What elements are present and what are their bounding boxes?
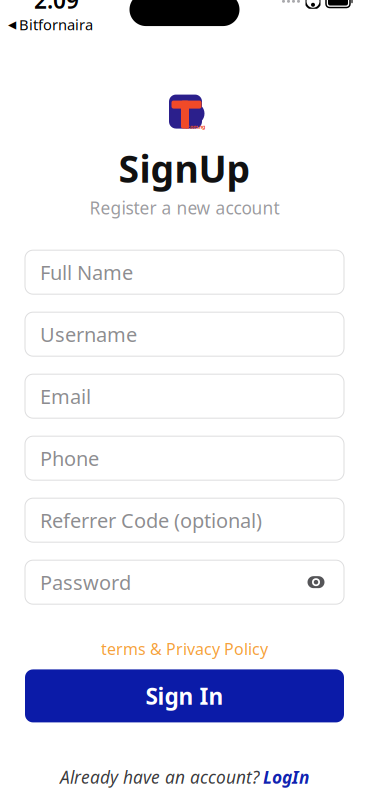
staticText: Phone — [40, 445, 99, 471]
staticText: LogIn — [263, 765, 309, 788]
staticText: Register a new account — [89, 196, 279, 219]
button[interactable]: Show password — [303, 569, 329, 595]
staticText: ◀ — [8, 19, 16, 31]
button[interactable]: terms & Privacy Policy — [95, 636, 274, 661]
button[interactable]: Sign In — [0, 669, 369, 722]
staticText: Bitfornaira — [19, 15, 93, 34]
button[interactable]: Already have an account? — [52, 761, 317, 792]
staticText: Sign In — [145, 681, 223, 711]
staticText: Already have an account? — [60, 765, 259, 788]
staticText: terms & Privacy Policy — [101, 638, 268, 659]
staticText: .com.ng — [186, 123, 205, 130]
staticText: SignUp — [118, 144, 250, 193]
staticText: Full Name — [40, 259, 133, 285]
staticText: 2:09 — [34, 0, 79, 15]
staticText: Username — [40, 321, 137, 347]
staticText: Email — [40, 383, 91, 409]
staticText: Password — [40, 569, 131, 595]
staticText: Referrer Code (optional) — [40, 507, 262, 533]
